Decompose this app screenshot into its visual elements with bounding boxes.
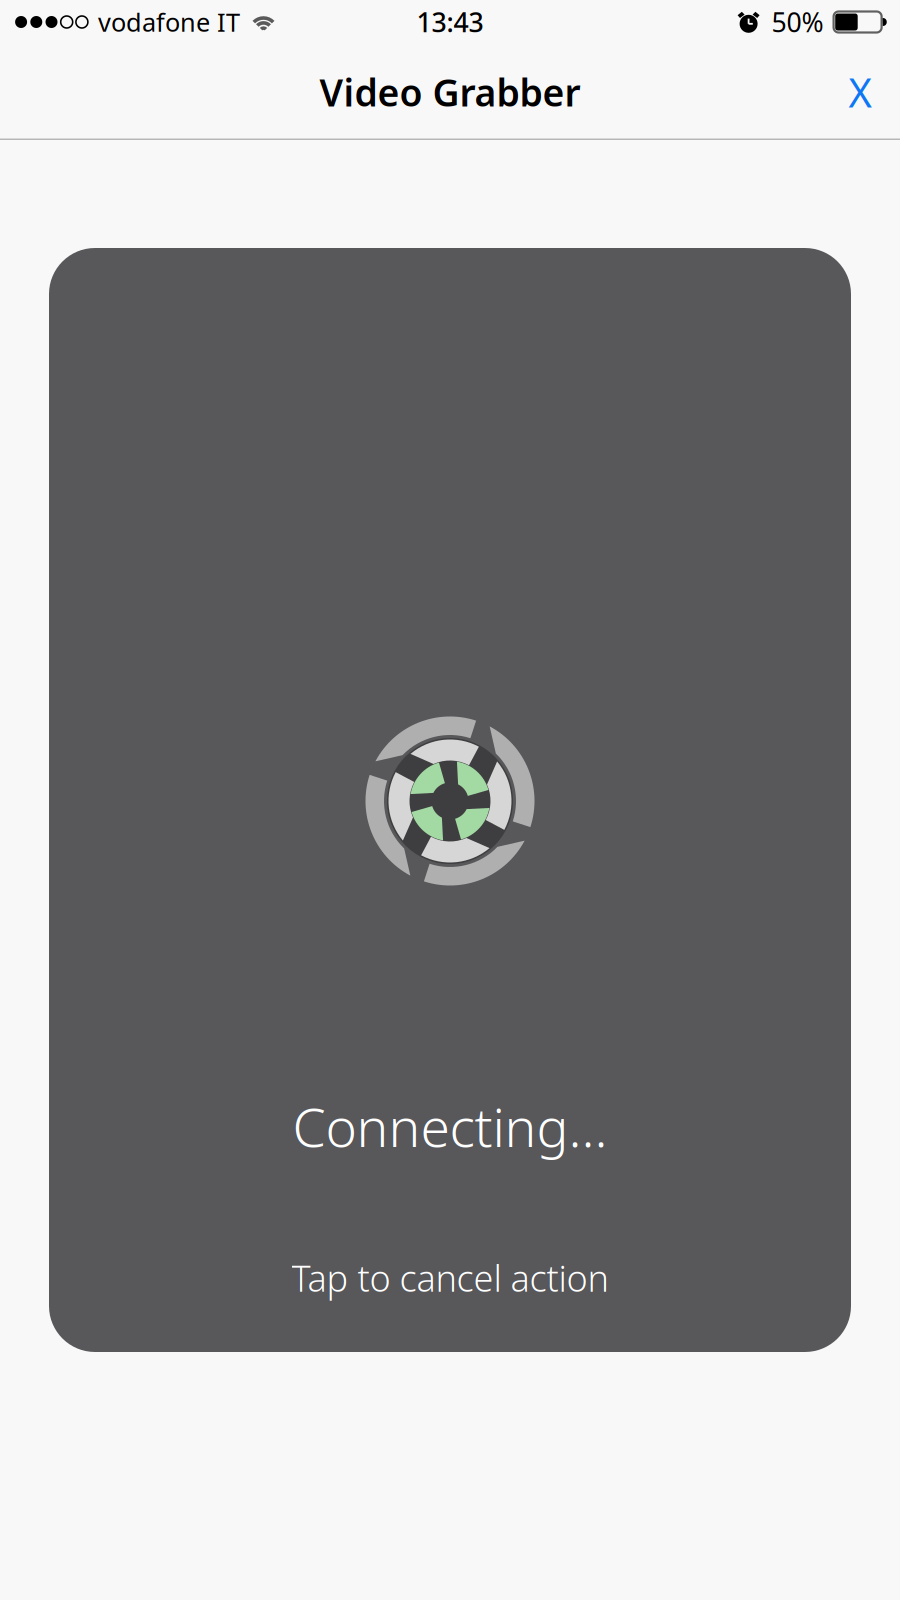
staticText: Video Grabber [319, 67, 580, 117]
staticText: vodafone IT [98, 5, 240, 39]
staticText: 50% [772, 4, 824, 40]
button[interactable]: Close [820, 44, 900, 139]
staticText: Connecting... [292, 1091, 607, 1162]
staticText: X [848, 65, 871, 118]
staticText: 13:43 [416, 4, 483, 40]
button[interactable]: Connecting... [49, 248, 851, 1352]
staticText: Tap to cancel action [291, 1254, 608, 1302]
